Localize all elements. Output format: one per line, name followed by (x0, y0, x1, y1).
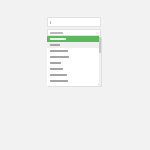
button[interactable] (47, 48, 101, 54)
button[interactable] (47, 72, 101, 78)
button[interactable] (47, 54, 101, 60)
button[interactable]: Search field (47, 17, 101, 27)
button[interactable]: Select option (47, 29, 101, 36)
button[interactable] (47, 60, 101, 66)
button[interactable] (47, 36, 101, 42)
button[interactable] (47, 42, 101, 48)
button[interactable] (47, 66, 101, 72)
button[interactable] (47, 78, 101, 84)
